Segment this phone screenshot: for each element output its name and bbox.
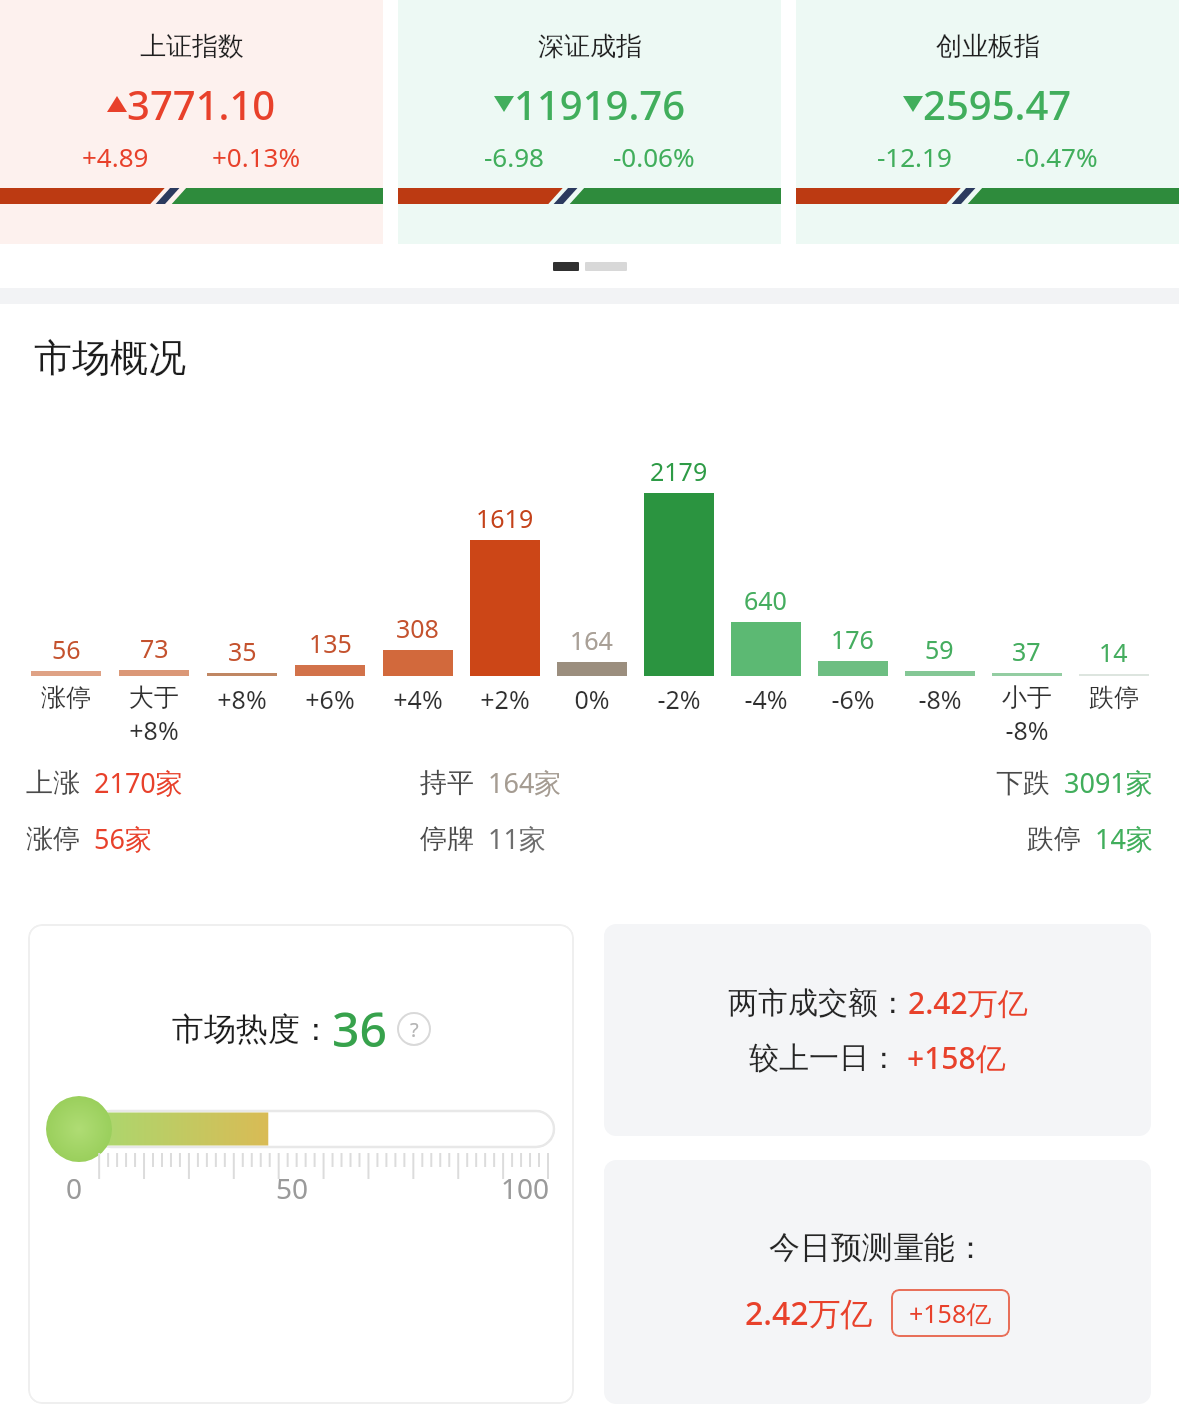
button[interactable]: 上证指数 [0, 0, 383, 244]
staticText: 14 [1099, 635, 1128, 669]
staticText: 上涨 [26, 766, 80, 800]
staticText: 36 [332, 996, 387, 1061]
button[interactable]: Help [397, 1012, 431, 1046]
staticText: 持平 [420, 766, 474, 800]
staticText: 176 [831, 622, 874, 656]
staticText: -6.98 [484, 139, 544, 174]
staticText: 创业板指 [936, 30, 1040, 63]
staticText: 涨停 [26, 822, 80, 856]
staticText: 大于 [129, 682, 179, 713]
staticText: 73 [140, 631, 169, 665]
staticText: 今日预测量能： [769, 1228, 986, 1267]
button[interactable]: 市场热度： [28, 924, 574, 1404]
staticText: -0.06% [613, 139, 695, 174]
staticText: +158亿 [909, 1296, 992, 1330]
staticText: -4% [744, 682, 788, 716]
staticText: 0 [66, 1169, 83, 1207]
button[interactable]: 涨停 [26, 820, 420, 857]
staticText: 11家 [488, 820, 546, 857]
staticText: 市场概况 [34, 334, 186, 382]
staticText: -0.47% [1016, 139, 1098, 174]
button[interactable]: 下跌 [996, 764, 1153, 801]
staticText: 50 [276, 1169, 309, 1207]
button[interactable]: 创业板指 [796, 0, 1179, 244]
staticText: +158亿 [907, 1037, 1006, 1078]
button[interactable]: 持平 [420, 764, 796, 801]
staticText: -6% [831, 682, 875, 716]
staticText: ? [410, 1016, 419, 1043]
staticText: 56家 [94, 820, 152, 857]
staticText: 2595.47 [923, 77, 1072, 131]
staticText: 56 [52, 632, 81, 666]
staticText: 深证成指 [538, 30, 642, 63]
staticText: 308 [396, 611, 439, 645]
staticText: 2.42万亿 [908, 982, 1028, 1023]
staticText: -8% [918, 682, 962, 716]
staticText: 11919.76 [514, 77, 686, 131]
staticText: +0.13% [212, 139, 301, 174]
staticText: 上证指数 [140, 30, 244, 63]
staticText: +4% [393, 682, 443, 716]
staticText: 164家 [488, 764, 562, 801]
staticText: 跌停 [1027, 822, 1081, 856]
staticText: 2179 [650, 454, 708, 488]
staticText: 跌停 [1089, 682, 1139, 713]
staticText: 2.42万亿 [745, 1291, 873, 1335]
button[interactable]: 跌停 [1027, 820, 1153, 857]
staticText: +8% [129, 713, 179, 747]
staticText: 100 [501, 1169, 550, 1207]
button[interactable]: 上涨 [26, 764, 420, 801]
button[interactable]: 今日预测量能： [604, 1160, 1151, 1404]
staticText: 37 [1012, 634, 1041, 668]
staticText: 涨停 [41, 682, 91, 713]
staticText: +4.89 [82, 139, 149, 174]
button[interactable]: 深证成指 [398, 0, 781, 244]
staticText: 1619 [476, 501, 534, 535]
staticText: 下跌 [996, 766, 1050, 800]
button[interactable]: 停牌 [420, 820, 796, 857]
staticText: 14家 [1095, 820, 1153, 857]
staticText: 两市成交额： [728, 984, 908, 1022]
staticText: 停牌 [420, 822, 474, 856]
staticText: -2% [657, 682, 701, 716]
staticText: -12.19 [877, 139, 952, 174]
staticText: +2% [480, 682, 530, 716]
staticText: 2170家 [94, 764, 183, 801]
staticText: 135 [309, 626, 352, 660]
staticText: 35 [228, 634, 257, 668]
staticText: 0% [574, 682, 610, 716]
staticText: 3771.10 [127, 77, 276, 131]
staticText: 市场热度： [172, 1009, 332, 1049]
staticText: +8% [217, 682, 267, 716]
staticText: 164 [570, 623, 613, 657]
staticText: +6% [305, 682, 355, 716]
staticText: 3091家 [1064, 764, 1153, 801]
staticText: -8% [1005, 713, 1049, 747]
staticText: 小于 [1002, 682, 1052, 713]
staticText: 较上一日： [749, 1039, 899, 1077]
button[interactable]: 两市成交额： [604, 924, 1151, 1136]
staticText: 640 [744, 583, 787, 617]
staticText: 59 [925, 632, 954, 666]
